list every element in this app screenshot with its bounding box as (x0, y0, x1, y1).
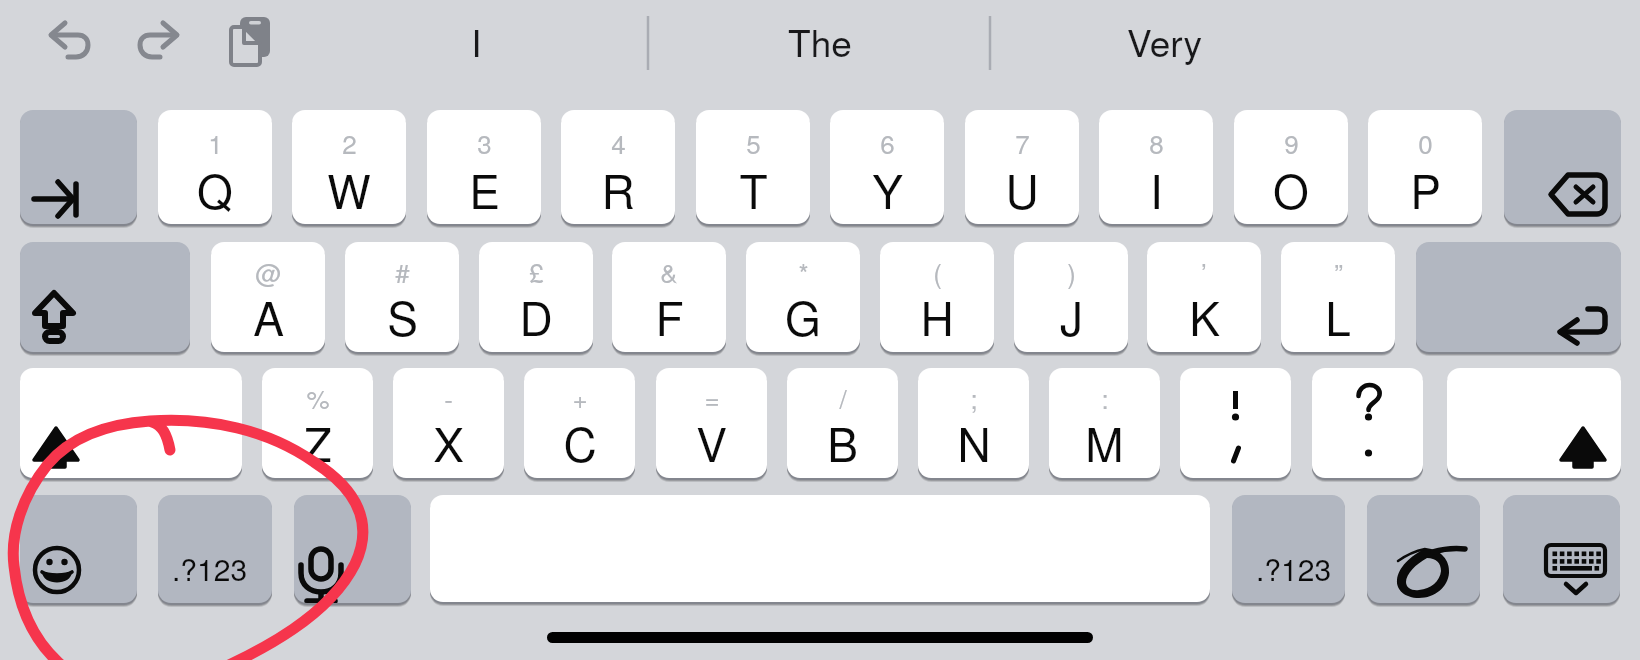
staticText: % (306, 379, 330, 416)
staticText: G (785, 283, 821, 349)
staticText: C (563, 409, 597, 475)
button[interactable]: H (880, 242, 994, 352)
button[interactable]: G (746, 242, 860, 352)
button[interactable]: Numbers and symbols (1232, 495, 1345, 603)
button[interactable]: The (710, 6, 930, 76)
staticText: 6 (880, 124, 895, 161)
button[interactable]: Handwriting (1367, 495, 1480, 603)
staticText: E (469, 156, 500, 222)
button[interactable]: Paste (218, 12, 284, 78)
staticText: T (739, 156, 768, 222)
button[interactable]: B (787, 368, 898, 478)
staticText: D (519, 283, 553, 349)
staticText: L (1325, 283, 1351, 349)
staticText: U (1005, 156, 1039, 222)
staticText: 7 (1015, 124, 1030, 161)
staticText: W (327, 156, 371, 222)
staticText: & (660, 253, 678, 290)
staticText: O (1273, 156, 1309, 222)
staticText: £ (529, 253, 544, 290)
staticText: - (444, 379, 453, 416)
button[interactable]: Backspace (1504, 110, 1621, 224)
staticText: K (1189, 283, 1220, 349)
button[interactable]: Redo (114, 14, 190, 76)
staticText: 9 (1284, 124, 1299, 161)
staticText: Y (872, 156, 903, 222)
staticText: .?123 (172, 547, 248, 590)
staticText: 8 (1149, 124, 1164, 161)
button[interactable]: S (345, 242, 459, 352)
staticText: I (1150, 156, 1163, 222)
staticText: 0 (1418, 124, 1433, 161)
button[interactable]: Numbers and symbols (158, 495, 272, 603)
button[interactable]: X (393, 368, 504, 478)
staticText: : (1101, 379, 1109, 416)
button[interactable]: Caps lock (20, 242, 190, 352)
staticText: .?123 (1256, 547, 1332, 590)
staticText: R (601, 156, 635, 222)
staticText: @ (255, 253, 282, 290)
button[interactable]: E (427, 110, 541, 224)
button[interactable]: U (965, 110, 1079, 224)
button[interactable]: F (612, 242, 726, 352)
button[interactable]: N (918, 368, 1029, 478)
staticText: Q (197, 156, 233, 222)
button[interactable]: I (1099, 110, 1213, 224)
button[interactable]: Undo (38, 14, 114, 76)
staticText: # (395, 253, 410, 290)
button[interactable]: D (479, 242, 593, 352)
button[interactable]: A (211, 242, 325, 352)
staticText: 1 (208, 124, 223, 161)
button[interactable]: Emoji (20, 495, 137, 603)
staticText: B (827, 409, 858, 475)
staticText: 5 (746, 124, 761, 161)
button[interactable]: T (696, 110, 810, 224)
button[interactable]: Shift (20, 368, 242, 478)
staticText: J (1060, 283, 1083, 349)
staticText: 3 (477, 124, 492, 161)
button[interactable]: Exclamation mark and semicolon (1180, 368, 1291, 478)
staticText: P (1410, 156, 1441, 222)
staticText: S (387, 283, 418, 349)
button[interactable]: Z (262, 368, 373, 478)
button[interactable]: V (656, 368, 767, 478)
staticText: M (1085, 409, 1124, 475)
button[interactable]: P (1368, 110, 1482, 224)
button[interactable]: I (366, 6, 586, 76)
button[interactable]: Hide keyboard (1503, 495, 1620, 603)
staticText: The (788, 15, 852, 68)
button[interactable]: Y (830, 110, 944, 224)
button[interactable]: Q (158, 110, 272, 224)
button[interactable]: Tab (20, 110, 137, 224)
staticText: 2 (342, 124, 357, 161)
staticText: A (253, 283, 284, 349)
button[interactable]: C (524, 368, 635, 478)
staticText: H (920, 283, 954, 349)
staticText: I (471, 15, 482, 68)
staticText: + (572, 379, 588, 416)
button[interactable]: J (1014, 242, 1128, 352)
button[interactable]: Shift (1447, 368, 1621, 478)
staticText: X (433, 409, 464, 475)
staticText: / (839, 379, 847, 416)
button[interactable]: Very (1054, 6, 1274, 76)
button[interactable]: R (561, 110, 675, 224)
button[interactable]: Enter (1416, 242, 1621, 352)
staticText: ’ (1201, 253, 1207, 290)
button[interactable]: W (292, 110, 406, 224)
button[interactable]: Question mark and full stop (1312, 368, 1423, 478)
staticText: ; (970, 379, 978, 416)
button[interactable]: Voice input (294, 495, 411, 603)
button[interactable]: L (1281, 242, 1395, 352)
staticText: ( (933, 253, 942, 290)
button[interactable]: K (1147, 242, 1261, 352)
staticText: V (696, 409, 727, 475)
staticText: Z (303, 409, 332, 475)
staticText: ” (1334, 253, 1343, 290)
button[interactable]: O (1234, 110, 1348, 224)
staticText: 4 (611, 124, 626, 161)
staticText: * (798, 253, 809, 290)
staticText: N (957, 409, 991, 475)
button[interactable]: M (1049, 368, 1160, 478)
